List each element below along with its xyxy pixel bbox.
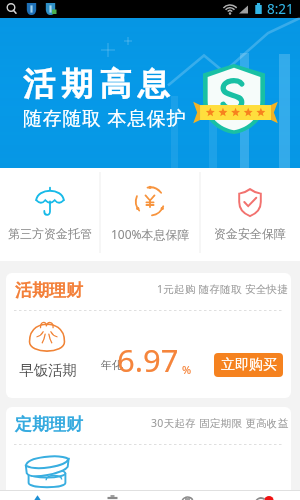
button[interactable]: 立即购买 — [214, 353, 283, 377]
staticText: 资金安全保障 — [214, 226, 286, 241]
button[interactable]: 首页 — [0, 490, 75, 500]
staticText: 1元起购 随存随取 安全快捷 — [157, 282, 289, 296]
button[interactable]: 定期理财 — [6, 407, 291, 500]
button[interactable]: 100%本息保障 — [100, 168, 200, 261]
staticText: 8:21 — [267, 0, 294, 18]
button[interactable]: 活期理财 — [6, 273, 291, 398]
staticText: 定期理财 — [15, 414, 83, 435]
staticText: 随存随取 本息保护 — [23, 105, 187, 131]
staticText: 早饭活期 — [19, 361, 77, 379]
button[interactable]: 我的 — [225, 490, 300, 500]
button[interactable]: 资金安全保障 — [200, 168, 300, 261]
staticText: 第三方资金托管 — [8, 226, 92, 241]
staticText: 100%本息保障 — [111, 226, 190, 242]
button[interactable]: 发现 — [150, 490, 225, 500]
button[interactable]: 理财 — [75, 490, 150, 500]
staticText: % — [182, 362, 192, 377]
staticText: 6.97 — [117, 339, 179, 381]
staticText: 活期高息 — [23, 64, 176, 104]
staticText: 30天起存 固定期限 更高收益 — [151, 416, 289, 430]
button[interactable]: 第三方资金托管 — [0, 168, 100, 261]
staticText: 立即购买 — [221, 356, 277, 374]
staticText: 活期理财 — [15, 280, 83, 301]
staticText: 年化 — [101, 358, 123, 372]
